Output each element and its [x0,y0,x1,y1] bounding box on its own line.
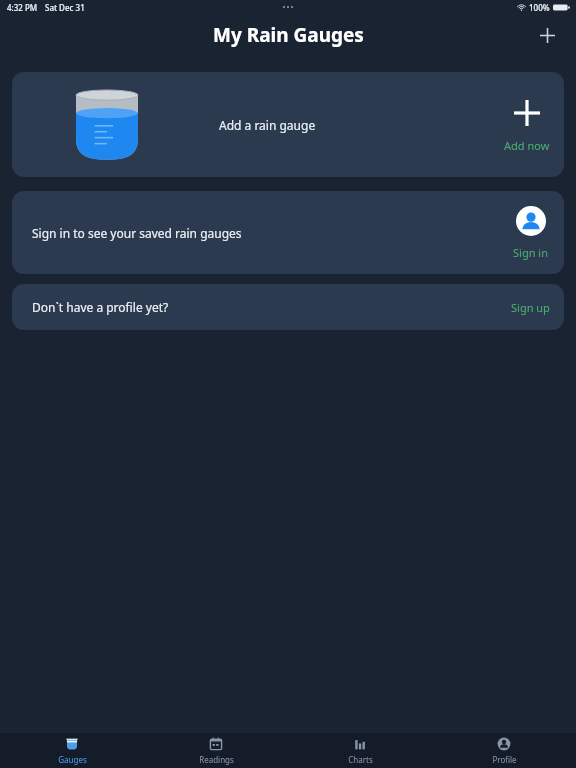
staticText: Readings [199,754,234,765]
staticText: 100% [529,2,550,13]
staticText: 4:32 PM [7,2,38,13]
staticText: My Rain Gauges [213,22,364,48]
staticText: Add a rain gauge [219,117,316,133]
staticText: Profile [492,754,517,765]
staticText: Charts [348,754,373,765]
button[interactable]: Charts [288,734,432,768]
staticText: Add now [504,138,550,153]
button[interactable]: Add rain gauge [532,20,562,50]
staticText: Don`t have a profile yet? [32,299,169,315]
staticText: Gauges [58,754,87,765]
button[interactable]: Readings [144,734,288,768]
button[interactable]: Account [516,206,546,236]
staticText: Sign in to see your saved rain gauges [32,225,242,241]
staticText: Sign up [511,300,550,315]
button[interactable]: Sign up [497,290,564,325]
staticText: Sign in [513,245,548,260]
button[interactable]: Add now [510,96,544,130]
button[interactable]: Profile [432,734,576,768]
staticText: Sat Dec 31 [45,2,85,13]
button[interactable]: Don`t have a profile yet? [12,284,564,330]
button[interactable]: Add a rain gauge [12,72,564,177]
button[interactable]: Sign in to see your saved rain gauges [12,191,564,274]
button[interactable]: Gauges [0,734,144,768]
